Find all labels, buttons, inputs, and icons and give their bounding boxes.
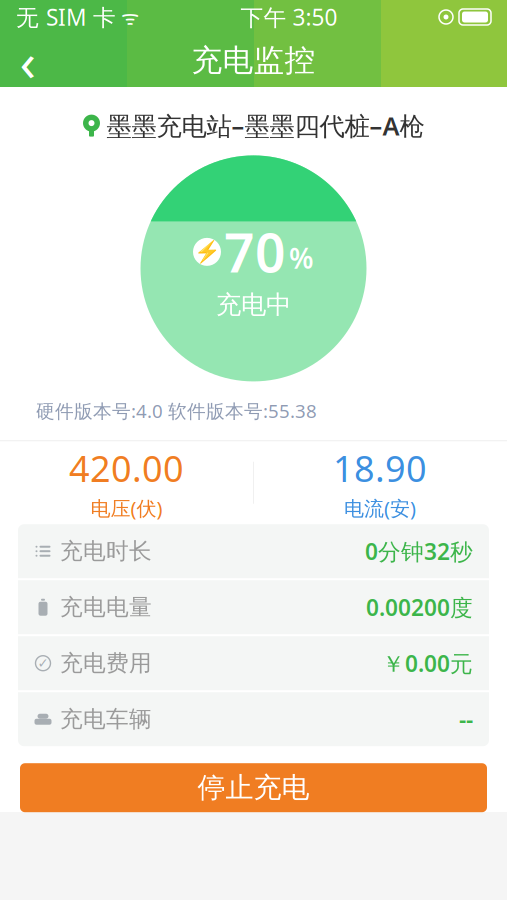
staticText: ✓: [37, 656, 48, 671]
button[interactable]: Back: [0, 34, 56, 87]
staticText: 70: [224, 216, 286, 287]
staticText: 无 SIM 卡: [16, 2, 116, 32]
staticText: 电流(安): [344, 495, 416, 521]
staticText: ᯤ: [116, 4, 139, 30]
button[interactable]: 充电车辆: [18, 692, 489, 746]
staticText: 下午 3:50: [240, 2, 337, 32]
staticText: 停止充电: [197, 770, 309, 805]
staticText: 电压(伏): [90, 495, 162, 521]
staticText: 充电费用: [60, 649, 152, 677]
staticText: 0分钟32秒: [365, 536, 473, 566]
staticText: %: [289, 239, 314, 276]
staticText: --: [459, 704, 473, 734]
staticText: 墨墨充电站–墨墨四代桩–A枪: [106, 109, 424, 142]
staticText: 充电时长: [60, 537, 152, 565]
button[interactable]: 充电电量: [18, 580, 489, 634]
button[interactable]: 充电时长: [18, 524, 489, 578]
staticText: 420.00: [69, 444, 184, 492]
staticText: 充电车辆: [60, 705, 152, 733]
staticText: 0.00200度: [366, 592, 473, 622]
staticText: 硬件版本号:4.0 软件版本号:55.38: [36, 398, 317, 423]
staticText: 充电监控: [191, 42, 315, 79]
staticText: ⚡: [193, 240, 220, 264]
staticText: ￥0.00元: [382, 648, 473, 678]
staticText: ‹: [19, 25, 36, 96]
staticText: 充电中: [216, 289, 291, 320]
button[interactable]: 停止充电: [20, 763, 487, 812]
staticText: 18.90: [333, 444, 427, 492]
button[interactable]: ✓: [18, 636, 489, 690]
staticText: 充电电量: [60, 593, 152, 621]
